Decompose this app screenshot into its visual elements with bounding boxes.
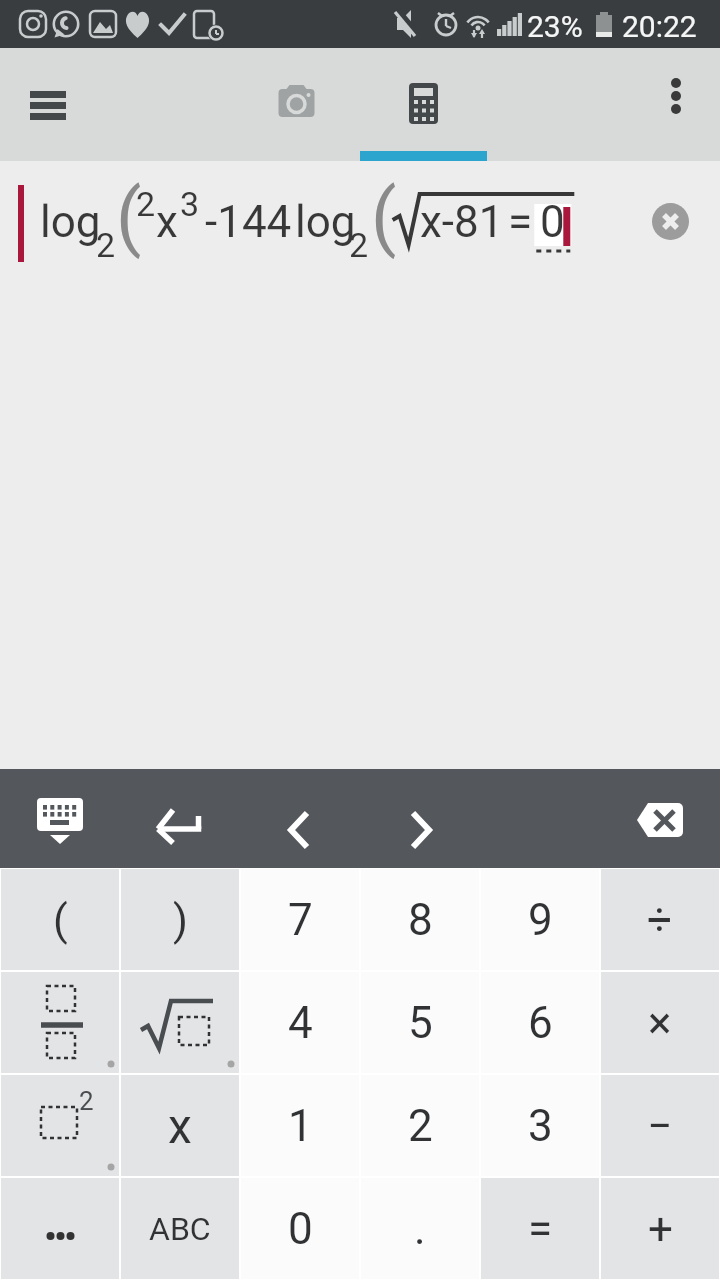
- staticText: 2: [408, 1100, 433, 1152]
- staticText: 20:22: [622, 9, 697, 44]
- button[interactable]: ): [121, 869, 239, 970]
- button[interactable]: +: [601, 1178, 719, 1279]
- button[interactable]: −: [601, 1075, 719, 1176]
- staticText: 0: [540, 196, 565, 248]
- staticText: 3: [528, 1100, 553, 1152]
- staticText: 23%: [527, 9, 583, 44]
- button[interactable]: [609, 779, 709, 858]
- staticText: ABC: [149, 1210, 211, 1248]
- button[interactable]: 6: [481, 972, 599, 1073]
- button[interactable]: [121, 972, 239, 1073]
- button[interactable]: 7: [241, 869, 359, 970]
- staticText: 1: [288, 1100, 313, 1152]
- staticText: 6: [528, 997, 553, 1049]
- staticText: ×: [648, 997, 672, 1049]
- staticText: 2: [79, 1086, 94, 1116]
- button[interactable]: 3: [481, 1075, 599, 1176]
- staticText: 0: [288, 1203, 313, 1255]
- staticText: .: [414, 1203, 426, 1255]
- button[interactable]: ABC: [121, 1178, 239, 1279]
- staticText: 7: [288, 894, 313, 946]
- button[interactable]: [10, 779, 110, 858]
- button[interactable]: 9: [481, 869, 599, 970]
- button[interactable]: 4: [241, 972, 359, 1073]
- staticText: 9: [528, 894, 553, 946]
- staticText: ): [173, 895, 188, 945]
- staticText: x: [168, 1098, 192, 1154]
- button[interactable]: 1: [241, 1075, 359, 1176]
- button[interactable]: [652, 203, 689, 240]
- button[interactable]: =: [481, 1178, 599, 1279]
- button[interactable]: x: [121, 1075, 239, 1176]
- button[interactable]: [14, 75, 82, 133]
- staticText: (: [53, 895, 68, 945]
- staticText: 4: [288, 997, 313, 1049]
- button[interactable]: 5: [361, 972, 479, 1073]
- button[interactable]: [370, 779, 470, 858]
- staticText: 2: [96, 225, 116, 265]
- button[interactable]: [250, 779, 350, 858]
- staticText: 5: [408, 997, 433, 1049]
- staticText: -144: [205, 196, 292, 248]
- staticText: −: [647, 1100, 673, 1152]
- button[interactable]: [1, 1178, 119, 1279]
- staticText: 8: [408, 894, 433, 946]
- button[interactable]: ÷: [601, 869, 719, 970]
- button[interactable]: 2: [1, 1075, 119, 1176]
- staticText: x-81: [420, 196, 504, 248]
- staticText: log: [40, 196, 101, 248]
- button[interactable]: 8: [361, 869, 479, 970]
- staticText: log: [295, 196, 356, 248]
- button[interactable]: ×: [601, 972, 719, 1073]
- staticText: ÷: [647, 894, 673, 946]
- staticText: 2: [349, 225, 369, 265]
- staticText: (: [371, 173, 397, 260]
- staticText: (: [116, 173, 142, 260]
- staticText: =: [508, 196, 533, 248]
- button[interactable]: [360, 48, 487, 161]
- button[interactable]: [646, 75, 706, 133]
- button[interactable]: 2: [361, 1075, 479, 1176]
- button[interactable]: [1, 972, 119, 1073]
- button[interactable]: (: [1, 869, 119, 970]
- staticText: +: [648, 1203, 673, 1255]
- staticText: =: [528, 1203, 553, 1255]
- button[interactable]: 0: [241, 1178, 359, 1279]
- button[interactable]: .: [361, 1178, 479, 1279]
- staticText: x: [156, 196, 178, 248]
- button[interactable]: [233, 48, 360, 161]
- staticText: 3: [180, 184, 200, 224]
- staticText: 2: [136, 184, 156, 224]
- button[interactable]: [130, 779, 230, 858]
